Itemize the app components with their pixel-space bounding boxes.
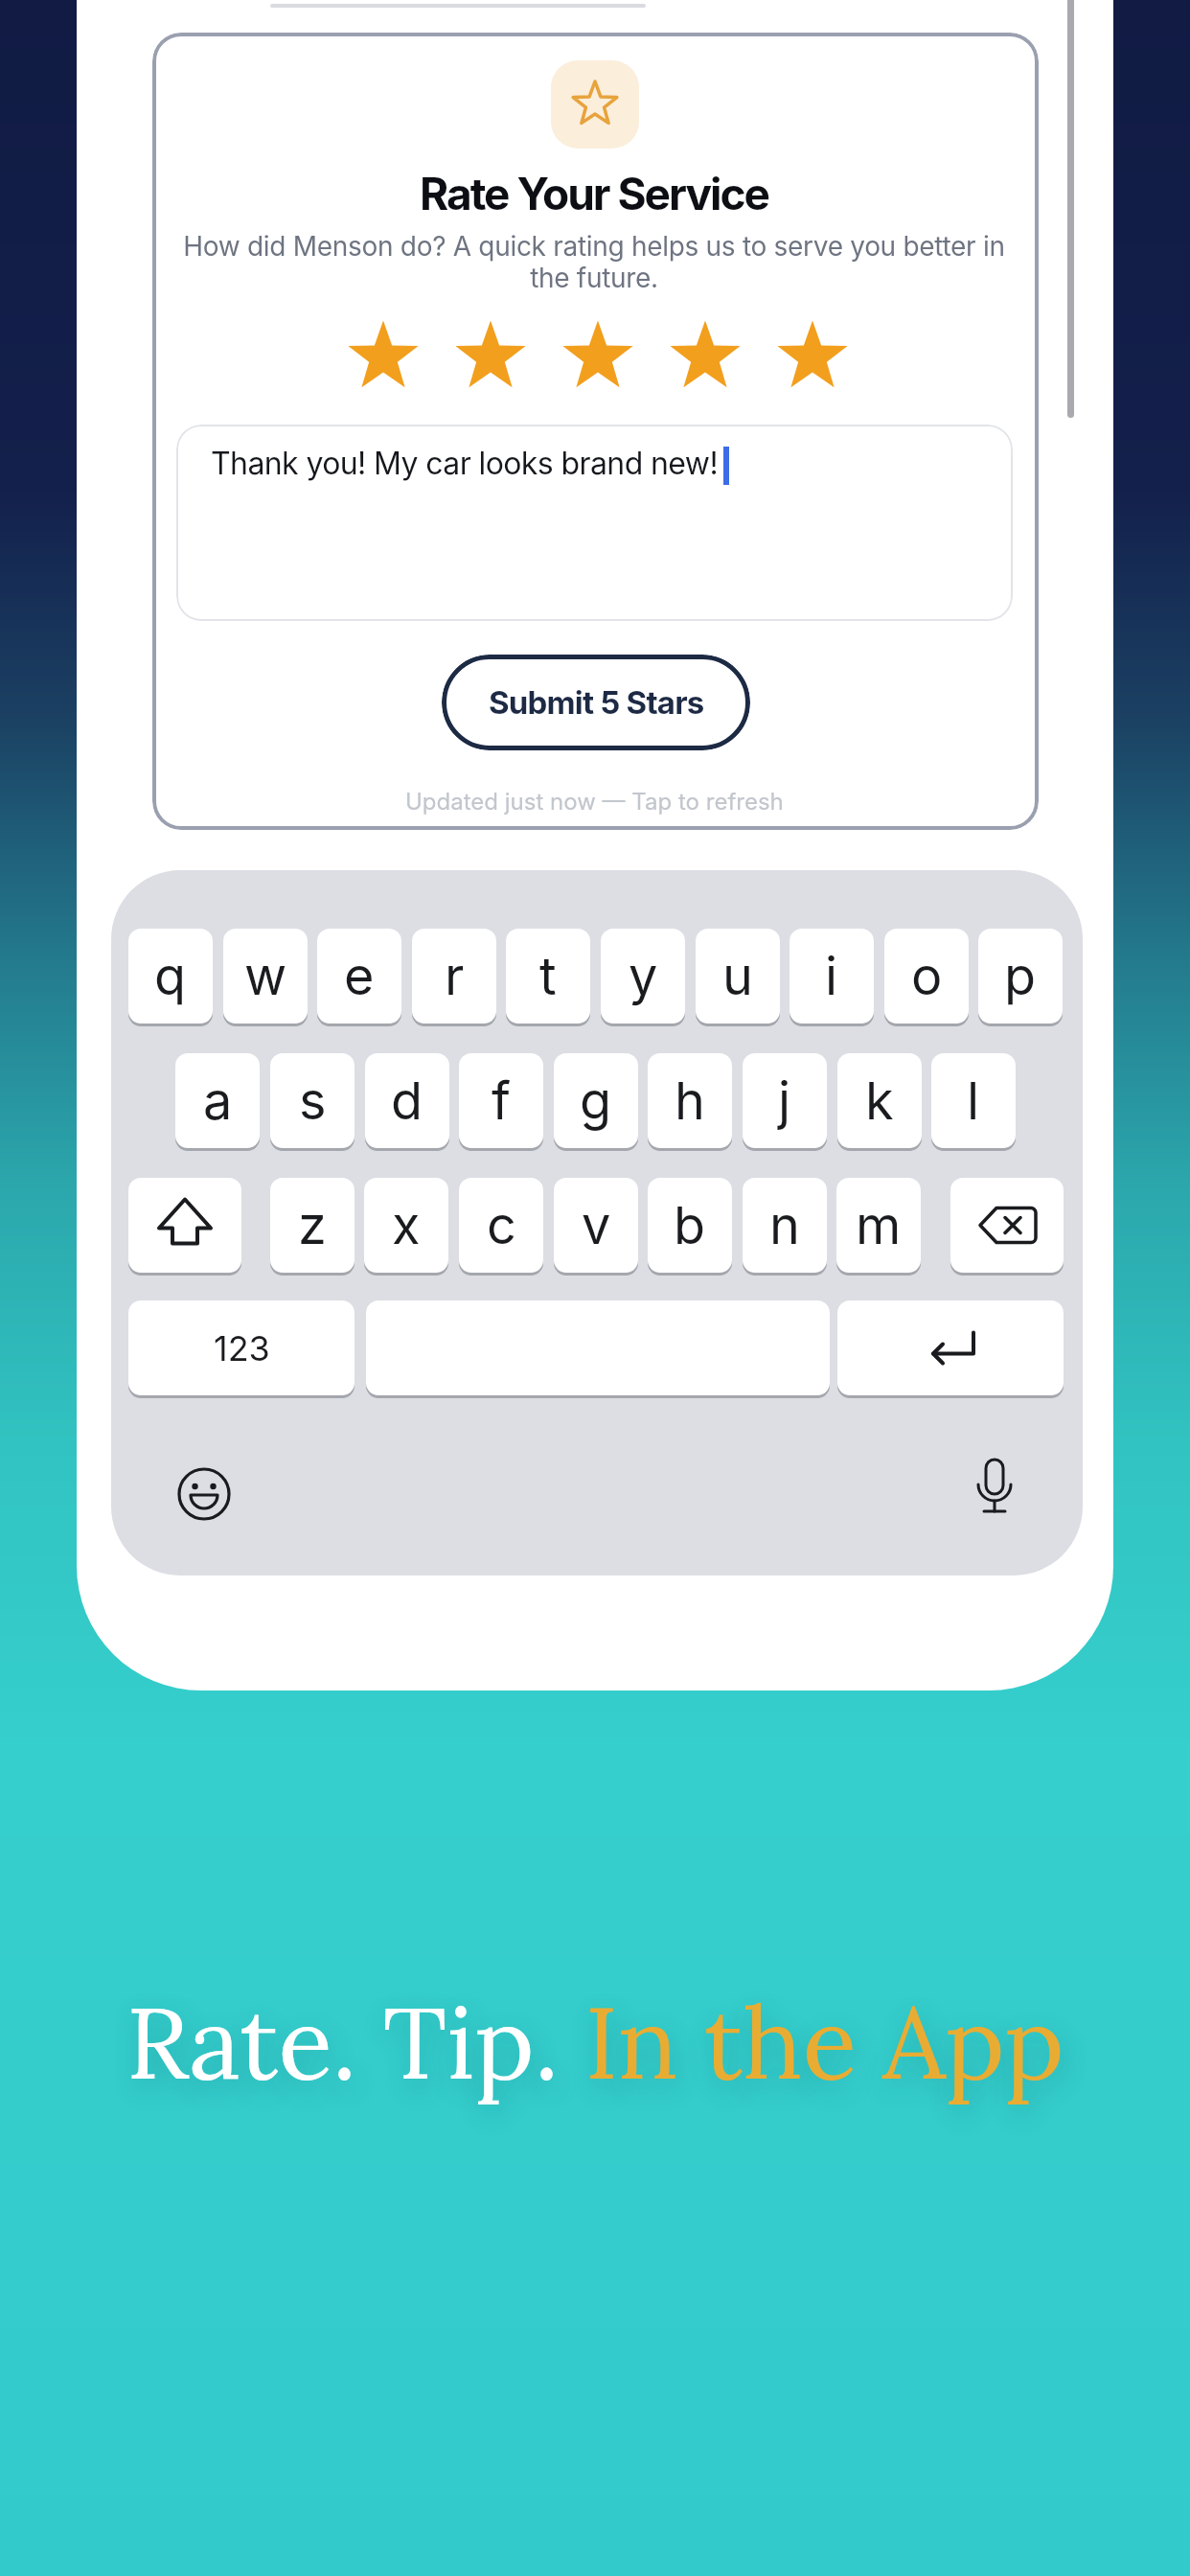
staticText: Rate Your Service [420,167,768,220]
button[interactable] [837,1300,1064,1395]
staticText: y [629,945,658,1007]
button[interactable]: z [270,1178,355,1273]
staticText: How did Menson do? A quick rating helps … [183,230,1005,294]
button[interactable]: m [836,1178,921,1273]
staticText: o [911,945,943,1007]
button[interactable]: r [412,929,496,1023]
staticText: Rate. Tip. In the App [126,1978,1064,2105]
button[interactable] [774,319,851,396]
button[interactable]: g [554,1053,638,1148]
button[interactable]: Updated just now — Tap to refresh [149,782,1040,820]
button[interactable]: i [790,929,874,1023]
button[interactable]: y [601,929,685,1023]
button[interactable]: k [837,1053,922,1148]
button[interactable]: c [459,1178,543,1273]
staticText: Submit 5 Stars [489,683,704,722]
staticText: c [487,1194,516,1256]
button[interactable]: o [884,929,969,1023]
staticText: Updated just now — Tap to refresh [405,788,784,816]
button[interactable]: q [128,929,213,1023]
staticText: q [154,945,187,1007]
button[interactable] [950,1178,1064,1273]
staticText: u [722,945,753,1007]
staticText: h [675,1069,705,1132]
button[interactable] [345,319,422,396]
button[interactable] [128,1178,241,1273]
staticText: e [344,945,375,1007]
button[interactable] [560,319,636,396]
button[interactable]: j [743,1053,827,1148]
staticText: a [203,1069,233,1132]
staticText: n [769,1194,800,1256]
staticText: 123 [214,1327,270,1369]
button[interactable]: p [978,929,1063,1023]
staticText: w [244,945,287,1007]
staticText: m [856,1194,902,1256]
button[interactable]: Submit 5 Stars [442,655,750,750]
button[interactable]: f [459,1053,543,1148]
staticText: v [582,1194,611,1256]
staticText: g [580,1069,612,1132]
button[interactable]: v [554,1178,638,1273]
staticText: t [539,945,557,1007]
button[interactable] [667,319,744,396]
button[interactable]: 123 [128,1300,355,1395]
button[interactable] [956,1452,1033,1529]
button[interactable]: n [743,1178,827,1273]
staticText: l [967,1069,980,1132]
staticText: p [1004,945,1037,1007]
button[interactable]: e [317,929,401,1023]
staticText: x [392,1194,421,1256]
button[interactable] [366,1300,830,1395]
staticText: s [299,1069,327,1132]
button[interactable] [166,1456,242,1532]
button[interactable]: b [648,1178,732,1273]
button[interactable] [452,319,529,396]
staticText: r [445,945,465,1007]
button[interactable]: Thank you! My car looks brand new! [176,425,1013,621]
button[interactable]: h [648,1053,732,1148]
button[interactable]: s [270,1053,355,1148]
staticText: b [674,1194,706,1256]
button[interactable]: w [223,929,308,1023]
staticText: j [778,1069,791,1132]
button[interactable]: t [506,929,590,1023]
button[interactable]: d [365,1053,449,1148]
button[interactable]: x [364,1178,448,1273]
staticText: z [298,1194,327,1256]
staticText: d [391,1069,423,1132]
staticText: k [865,1069,894,1132]
staticText: Thank you! My car looks brand new! [211,445,719,482]
button[interactable]: l [931,1053,1016,1148]
button[interactable]: a [175,1053,260,1148]
button[interactable]: u [696,929,780,1023]
staticText: i [825,945,838,1007]
staticText: f [492,1069,511,1132]
